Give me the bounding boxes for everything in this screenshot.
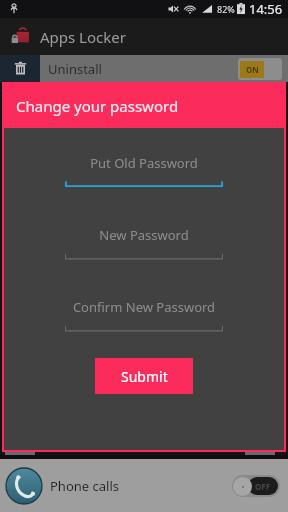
staticText: 14:56	[249, 0, 283, 18]
button[interactable]: Apps Locker logo	[0, 18, 288, 55]
button[interactable]: Phone calls toggle, off	[232, 475, 280, 497]
button[interactable]: Uninstall toggle, on	[238, 58, 282, 80]
button[interactable]: New Password	[4, 226, 284, 260]
staticText: Submit	[121, 367, 168, 386]
staticText: New Password	[4, 226, 284, 244]
button[interactable]: Phone calls	[0, 459, 288, 512]
staticText: Phone calls	[50, 477, 119, 495]
button[interactable]: Put Old Password	[4, 154, 284, 188]
button[interactable]: Uninstall	[0, 55, 288, 82]
button[interactable]: Submit	[95, 358, 193, 394]
staticText: Put Old Password	[4, 154, 284, 172]
staticText: ON	[246, 64, 259, 75]
staticText: OFF	[255, 481, 271, 492]
button[interactable]: Confirm New Password	[4, 298, 284, 332]
other: Apps Locker logo	[10, 26, 31, 47]
staticText: 82%	[217, 3, 235, 15]
staticText: Change your password	[16, 96, 179, 116]
staticText: Apps Locker	[40, 27, 126, 47]
staticText: Confirm New Password	[4, 298, 284, 316]
staticText: Uninstall	[48, 60, 102, 78]
